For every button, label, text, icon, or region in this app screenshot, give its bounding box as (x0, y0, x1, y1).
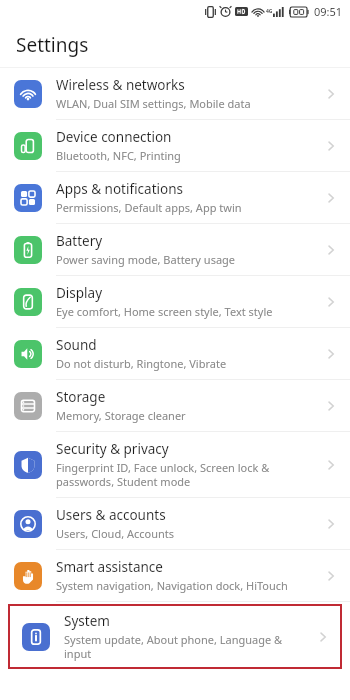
staticText: System (64, 612, 110, 630)
button[interactable]: Wireless & networks (0, 68, 350, 120)
staticText: System navigation, Navigation dock, HiTo… (56, 578, 288, 593)
staticText: WLAN, Dual SIM settings, Mobile data (56, 96, 251, 111)
staticText: Do not disturb, Ringtone, Vibrate (56, 356, 227, 371)
other: Battery (324, 243, 338, 257)
button[interactable]: Display (0, 276, 350, 328)
button[interactable]: Storage (0, 380, 350, 432)
button[interactable]: Smart assistance (0, 550, 350, 602)
staticText: Bluetooth, NFC, Printing (56, 148, 181, 163)
staticText: 09:51 (314, 4, 343, 19)
staticText: 4G (266, 8, 273, 15)
staticText: Power saving mode, Battery usage (56, 252, 236, 267)
staticText: Users & accounts (56, 506, 166, 524)
staticText: Battery (56, 232, 103, 250)
staticText: Apps & notifications (56, 180, 183, 198)
staticText: Display (56, 284, 103, 302)
other: Storage (324, 399, 338, 413)
staticText: Storage (56, 388, 106, 406)
other: Security & privacy (324, 458, 338, 472)
staticText: Fingerprint ID, Face unlock, Screen lock… (56, 460, 270, 489)
staticText: Settings (16, 32, 89, 58)
other: Sound (324, 347, 338, 361)
other: Device connection (324, 139, 338, 153)
staticText: Security & privacy (56, 440, 169, 458)
button[interactable]: Users & accounts (0, 498, 350, 550)
staticText: Device connection (56, 128, 172, 146)
staticText: Users, Cloud, Accounts (56, 526, 175, 541)
staticText: Sound (56, 336, 97, 354)
other: Apps & notifications (324, 191, 338, 205)
other: System (316, 630, 330, 644)
staticText: Permissions, Default apps, App twin (56, 200, 242, 215)
staticText: Memory, Storage cleaner (56, 408, 186, 423)
staticText: Eye comfort, Home screen style, Text sty… (56, 304, 273, 319)
button[interactable]: Security & privacy (0, 432, 350, 498)
button[interactable]: System (8, 604, 342, 669)
button[interactable]: Apps & notifications (0, 172, 350, 224)
staticText: Wireless & networks (56, 76, 185, 94)
staticText: Smart assistance (56, 558, 163, 576)
other: Wireless & networks (324, 87, 338, 101)
other: Display (324, 295, 338, 309)
other: Smart assistance (324, 569, 338, 583)
button[interactable]: Device connection (0, 120, 350, 172)
button[interactable]: Battery (0, 224, 350, 276)
staticText: System update, About phone, Language & i… (64, 632, 283, 661)
button[interactable]: Sound (0, 328, 350, 380)
other: Users & accounts (324, 517, 338, 531)
